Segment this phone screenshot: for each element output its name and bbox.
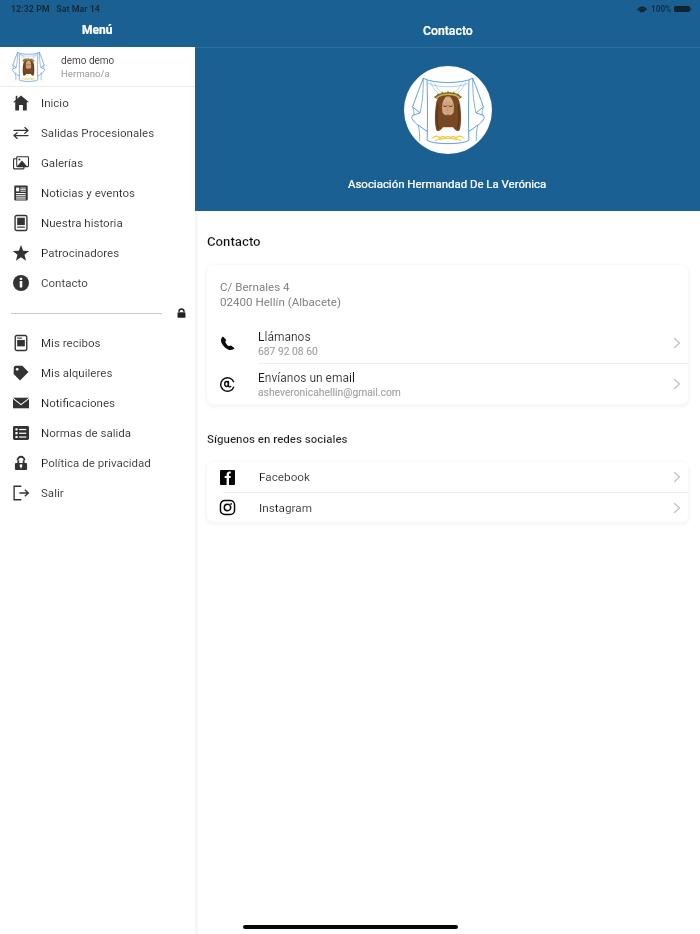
staticText: 12:32 PM Sat Mar 14	[11, 4, 100, 14]
staticText: Salir	[41, 486, 64, 500]
button[interactable]: Galerías	[0, 148, 195, 178]
staticText: Síguenos en redes sociales	[207, 432, 348, 445]
staticText: Mis alquileres	[41, 366, 113, 380]
other: Call us	[672, 334, 682, 352]
staticText: C/ Bernales 4	[220, 280, 290, 294]
staticText: Envíanos un email	[258, 371, 355, 385]
staticText: Contacto	[423, 24, 473, 38]
staticText: Inicio	[41, 96, 69, 110]
button[interactable]: Notificaciones	[0, 388, 195, 418]
staticText: Galerías	[41, 156, 84, 170]
button[interactable]: Noticias y eventos	[0, 178, 195, 208]
staticText: Noticias y eventos	[41, 186, 135, 200]
staticText: Hermano/a	[61, 68, 110, 79]
button[interactable]: Política de privacidad	[0, 448, 195, 478]
button[interactable]: Facebook	[207, 462, 688, 492]
button[interactable]: Llámanos	[207, 323, 688, 363]
staticText: Notificaciones	[41, 396, 116, 410]
staticText: 02400 Hellín (Albacete)	[220, 295, 342, 309]
button[interactable]: Nuestra historia	[0, 208, 195, 238]
staticText: asheveronicahellin@gmail.com	[258, 386, 401, 398]
staticText: Facebook	[259, 470, 672, 484]
button[interactable]: Instagram	[207, 493, 688, 522]
button[interactable]: Envíanos un email	[207, 364, 688, 404]
button[interactable]: Salidas Procesionales	[0, 118, 195, 148]
staticText: Contacto	[41, 276, 88, 290]
staticText: Política de privacidad	[41, 456, 151, 470]
staticText: Salidas Procesionales	[41, 126, 155, 140]
button[interactable]: Mis alquileres	[0, 358, 195, 388]
button[interactable]: Inicio	[0, 88, 195, 118]
staticText: 100%	[651, 4, 672, 14]
button[interactable]: Mis recibos	[0, 328, 195, 358]
button[interactable]: Salir	[0, 478, 195, 508]
staticText: demo demo	[61, 55, 115, 67]
staticText: Llámanos	[258, 330, 311, 344]
button[interactable]: Contacto	[0, 268, 195, 298]
other: Battery full	[674, 6, 692, 12]
staticText: Mis recibos	[41, 336, 101, 350]
staticText: Nuestra historia	[41, 216, 123, 230]
staticText: Contacto	[207, 234, 261, 249]
button[interactable]: demo demo	[0, 47, 195, 86]
button[interactable]: Normas de salida	[0, 418, 195, 448]
staticText: Asociación Hermandad De La Verónica	[348, 177, 547, 190]
staticText: Patrocinadores	[41, 246, 120, 260]
staticText: 687 92 08 60	[258, 345, 318, 357]
button[interactable]: Patrocinadores	[0, 238, 195, 268]
staticText: Normas de salida	[41, 426, 132, 440]
other: Wi-Fi	[637, 6, 647, 12]
staticText: Menú	[82, 23, 113, 37]
other: Send email	[672, 375, 682, 393]
other: Locked section	[177, 308, 186, 318]
staticText: Instagram	[259, 501, 672, 515]
